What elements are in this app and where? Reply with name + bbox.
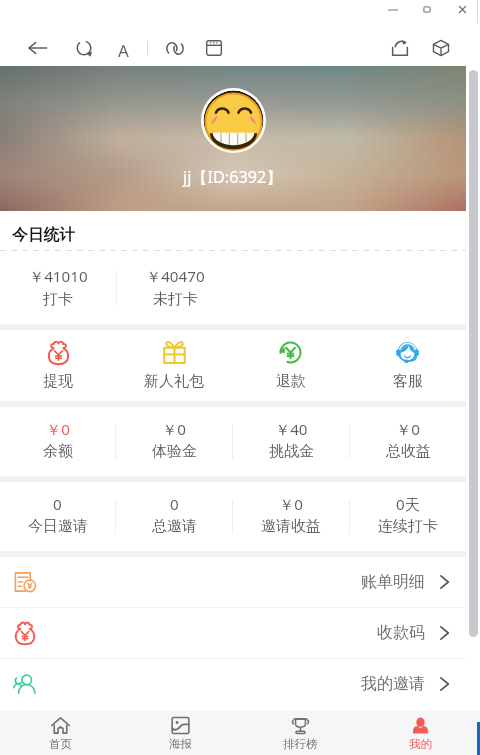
- staticText: 连续打卡: [378, 517, 438, 536]
- staticText: 今日邀请: [28, 517, 88, 536]
- staticText: 提现: [43, 372, 73, 391]
- button[interactable]: 客服: [349, 330, 466, 401]
- staticText: ￥0: [162, 419, 186, 440]
- button[interactable]: 收款码: [0, 608, 466, 658]
- staticText: 邀请收益: [261, 517, 321, 536]
- staticText: ￥40470: [146, 266, 205, 287]
- staticText: 我的: [409, 737, 432, 751]
- button[interactable]: Minimize: [380, 3, 406, 16]
- button[interactable]: More: [433, 40, 449, 56]
- staticText: ￥0: [46, 419, 70, 440]
- button[interactable]: ￥0: [0, 407, 115, 476]
- staticText: 总收益: [386, 442, 431, 461]
- staticText: 客服: [393, 372, 423, 391]
- button[interactable]: 账单明细: [0, 557, 466, 607]
- staticText: 挑战金: [269, 442, 314, 461]
- staticText: 0: [53, 494, 62, 515]
- staticText: 体验金: [152, 442, 197, 461]
- button[interactable]: 提现: [0, 330, 116, 401]
- staticText: ￥0: [279, 494, 303, 515]
- button[interactable]: 退款: [232, 330, 349, 401]
- staticText: 账单明细: [361, 572, 425, 592]
- button[interactable]: Back: [28, 40, 47, 56]
- staticText: 未打卡: [153, 290, 198, 309]
- button[interactable]: 我的: [360, 711, 480, 755]
- button[interactable]: 0: [116, 482, 232, 551]
- button[interactable]: Link: [166, 42, 184, 55]
- staticText: 今日统计: [12, 225, 75, 245]
- staticText: 0天: [396, 494, 420, 515]
- button[interactable]: ￥41010: [0, 251, 116, 324]
- staticText: ￥40: [275, 419, 308, 440]
- staticText: ￥41010: [29, 266, 88, 287]
- staticText: 收款码: [377, 623, 425, 643]
- staticText: ￥0: [396, 419, 420, 440]
- button[interactable]: 0: [0, 482, 115, 551]
- staticText: 首页: [49, 737, 72, 751]
- staticText: 0: [170, 494, 179, 515]
- button[interactable]: ￥0: [233, 482, 349, 551]
- button[interactable]: 我的邀请: [0, 659, 466, 709]
- button[interactable]: ￥0: [350, 407, 466, 476]
- staticText: 余额: [43, 442, 73, 461]
- button[interactable]: 排行榜: [240, 711, 360, 755]
- staticText: 打卡: [43, 290, 73, 309]
- button[interactable]: ￥40470: [117, 251, 233, 324]
- button[interactable]: Font size: [111, 39, 135, 59]
- staticText: 排行榜: [283, 737, 318, 751]
- button[interactable]: 0天: [350, 482, 466, 551]
- staticText: 海报: [169, 737, 192, 751]
- staticText: 我的邀请: [361, 674, 425, 694]
- staticText: 总邀请: [152, 517, 197, 536]
- staticText: jj【ID:6392】: [183, 166, 283, 188]
- staticText: 退款: [276, 372, 306, 391]
- button[interactable]: Refresh: [76, 40, 92, 56]
- button[interactable]: Windows: [206, 40, 222, 56]
- button[interactable]: Close: [452, 3, 472, 16]
- button[interactable]: 海报: [120, 711, 240, 755]
- button[interactable]: 新人礼包: [116, 330, 232, 401]
- staticText: 新人礼包: [144, 372, 204, 391]
- button[interactable]: Maximize: [417, 3, 437, 16]
- button[interactable]: ￥0: [116, 407, 232, 476]
- button[interactable]: 首页: [0, 711, 120, 755]
- button[interactable]: ￥40: [233, 407, 349, 476]
- button[interactable]: Share: [392, 40, 408, 56]
- staticText: A: [118, 39, 129, 59]
